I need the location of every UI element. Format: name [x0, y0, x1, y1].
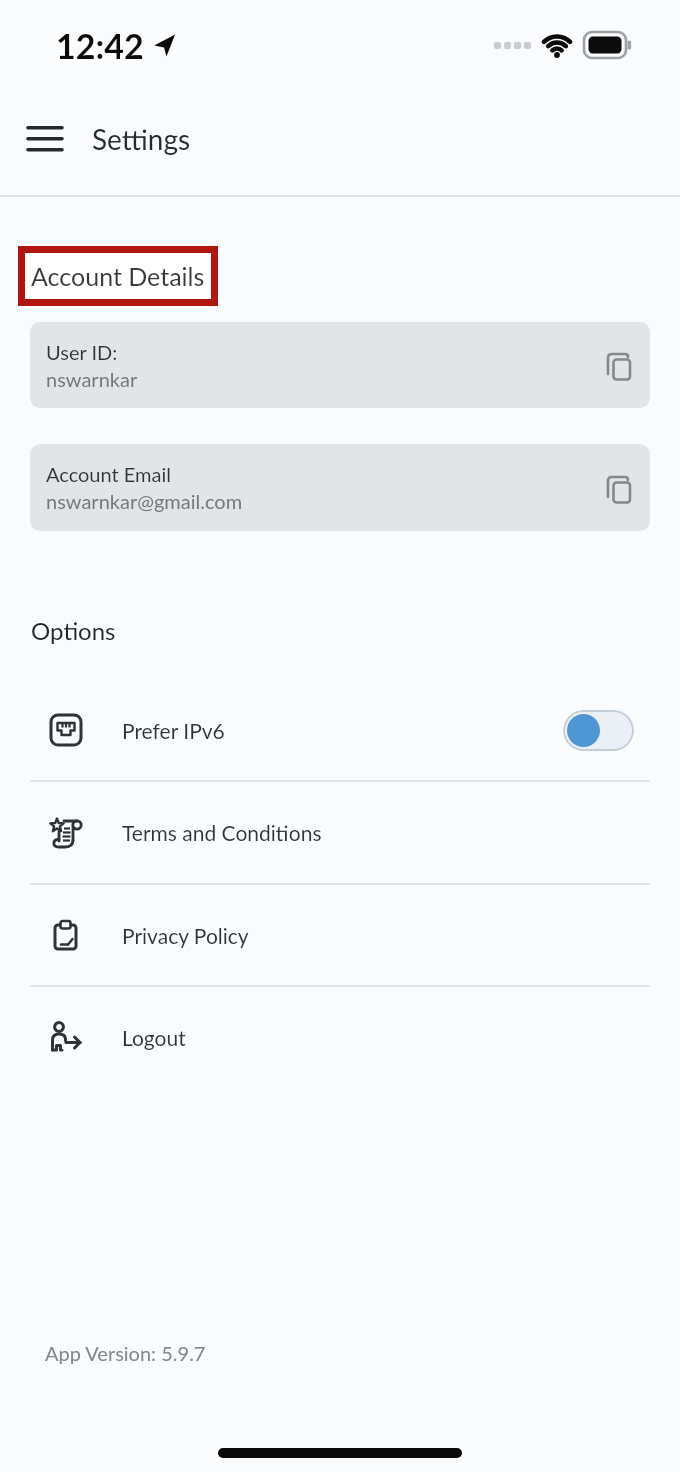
button[interactable]: User ID: — [46, 322, 636, 408]
staticText: Terms and Conditions — [122, 820, 322, 845]
button[interactable] — [563, 710, 634, 751]
button[interactable]: Logout — [30, 987, 650, 1087]
staticText: nswarnkar@gmail.com — [46, 489, 243, 513]
button[interactable]: Terms and Conditions — [30, 782, 650, 883]
staticText: Privacy Policy — [122, 923, 249, 948]
button[interactable]: Privacy Policy — [30, 885, 650, 985]
staticText: nswarnkar — [46, 367, 138, 391]
staticText: User ID: — [46, 340, 118, 364]
staticText: Account Details — [31, 261, 205, 291]
button[interactable]: Prefer IPv6 — [30, 680, 650, 780]
staticText: Prefer IPv6 — [122, 718, 225, 743]
staticText: Settings — [92, 122, 191, 156]
button[interactable]: Account Email — [46, 444, 636, 531]
staticText: Options — [31, 616, 116, 645]
staticText: Account Email — [46, 462, 171, 486]
button[interactable] — [598, 469, 636, 507]
staticText: App Version: 5.9.7 — [45, 1341, 206, 1365]
button[interactable] — [598, 346, 636, 384]
staticText: Logout — [122, 1025, 186, 1050]
button[interactable] — [28, 126, 62, 152]
staticText: 12:42 — [56, 25, 144, 66]
